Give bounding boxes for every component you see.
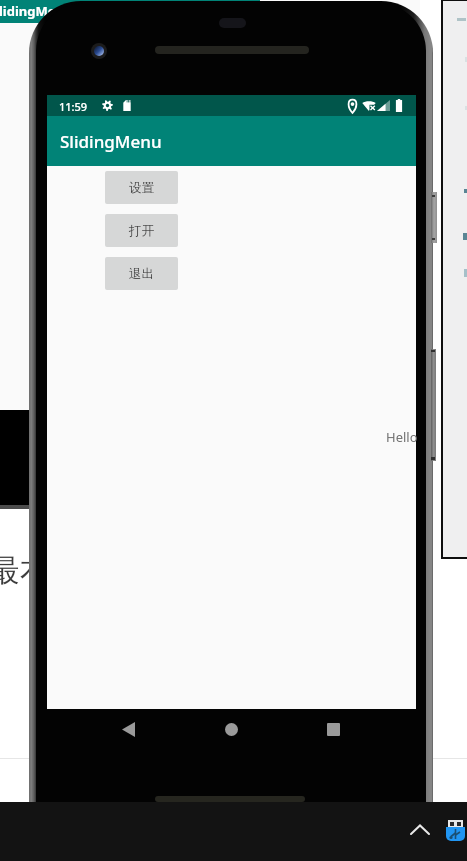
staticText: 设置 bbox=[129, 180, 154, 196]
button[interactable]: Home bbox=[216, 714, 246, 744]
staticText: 退出 bbox=[129, 266, 154, 282]
button[interactable]: 打开 bbox=[105, 214, 178, 247]
button[interactable]: Back bbox=[113, 714, 143, 744]
button[interactable]: 设置 bbox=[105, 171, 178, 204]
button[interactable]: USB device bbox=[444, 818, 466, 843]
staticText: Hello bbox=[386, 428, 418, 446]
staticText: 打开 bbox=[129, 223, 154, 239]
staticText: lidingMenu bbox=[0, 2, 73, 20]
button[interactable]: 退出 bbox=[105, 257, 178, 290]
staticText: 11:59 bbox=[59, 99, 88, 114]
staticText: SlidingMenu bbox=[60, 130, 162, 153]
staticText: 最右 bbox=[0, 551, 51, 590]
button[interactable]: Show hidden icons bbox=[405, 818, 435, 844]
button[interactable]: Recent apps bbox=[318, 714, 348, 744]
